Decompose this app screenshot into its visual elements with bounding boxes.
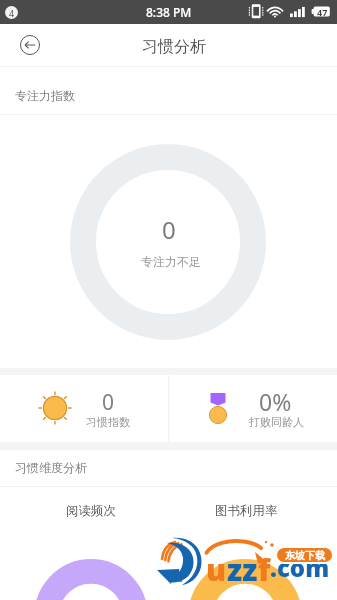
staticText: 习惯指数 <box>86 415 130 429</box>
staticText: zz <box>227 549 258 590</box>
staticText: 0 <box>102 388 115 417</box>
staticText: f <box>258 549 271 590</box>
button[interactable]: 0 <box>0 375 168 442</box>
staticText: 0% <box>259 386 292 417</box>
staticText: 专注力不足 <box>141 254 201 269</box>
staticText: 阅读频次 <box>66 503 116 519</box>
button[interactable]: Back <box>14 29 45 60</box>
staticText: 专注力指数 <box>15 88 75 103</box>
staticText: 东坡下载 <box>285 549 325 562</box>
staticText: 习惯分析 <box>142 37 206 57</box>
staticText: 图书利用率 <box>215 503 278 519</box>
staticText: 0 <box>162 213 176 246</box>
staticText: 习惯维度分析 <box>15 460 87 475</box>
staticText: 打败同龄人 <box>249 415 304 429</box>
button[interactable]: 0% <box>169 375 337 442</box>
staticText: u <box>206 549 227 590</box>
staticText: 4 <box>9 7 15 19</box>
staticText: 8:38 PM <box>146 4 192 20</box>
staticText: .com <box>270 551 330 584</box>
staticText: 47 <box>317 6 328 16</box>
